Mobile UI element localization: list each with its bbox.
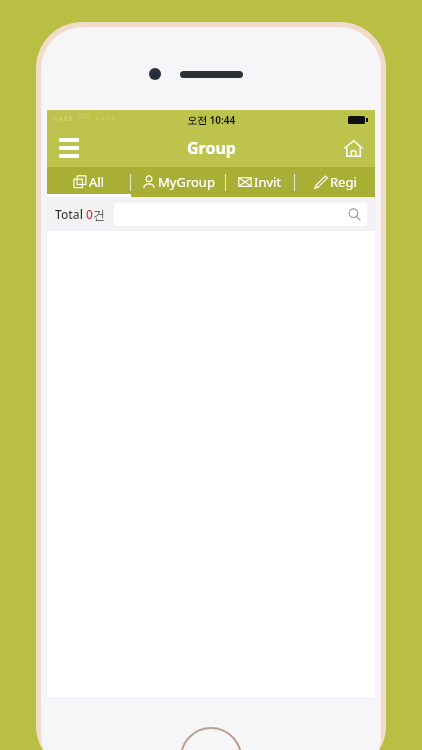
staticText: SKT: [78, 112, 91, 122]
staticText: All: [89, 173, 105, 191]
staticText: 오전 10:44: [187, 113, 236, 127]
button[interactable]: Menu: [47, 129, 91, 167]
button[interactable]: Regi: [295, 167, 375, 197]
button[interactable]: Home: [331, 129, 375, 167]
other: Search: [348, 208, 361, 221]
button[interactable]: Search: [114, 203, 367, 226]
staticText: Total 0건: [55, 206, 105, 222]
staticText: Regi: [330, 173, 357, 191]
button[interactable]: Invit: [226, 167, 294, 197]
staticText: Group: [187, 137, 236, 159]
button[interactable]: MyGroup: [131, 167, 225, 197]
staticText: Invit: [254, 173, 282, 191]
staticText: MyGroup: [158, 173, 215, 191]
button[interactable]: All: [47, 167, 130, 197]
